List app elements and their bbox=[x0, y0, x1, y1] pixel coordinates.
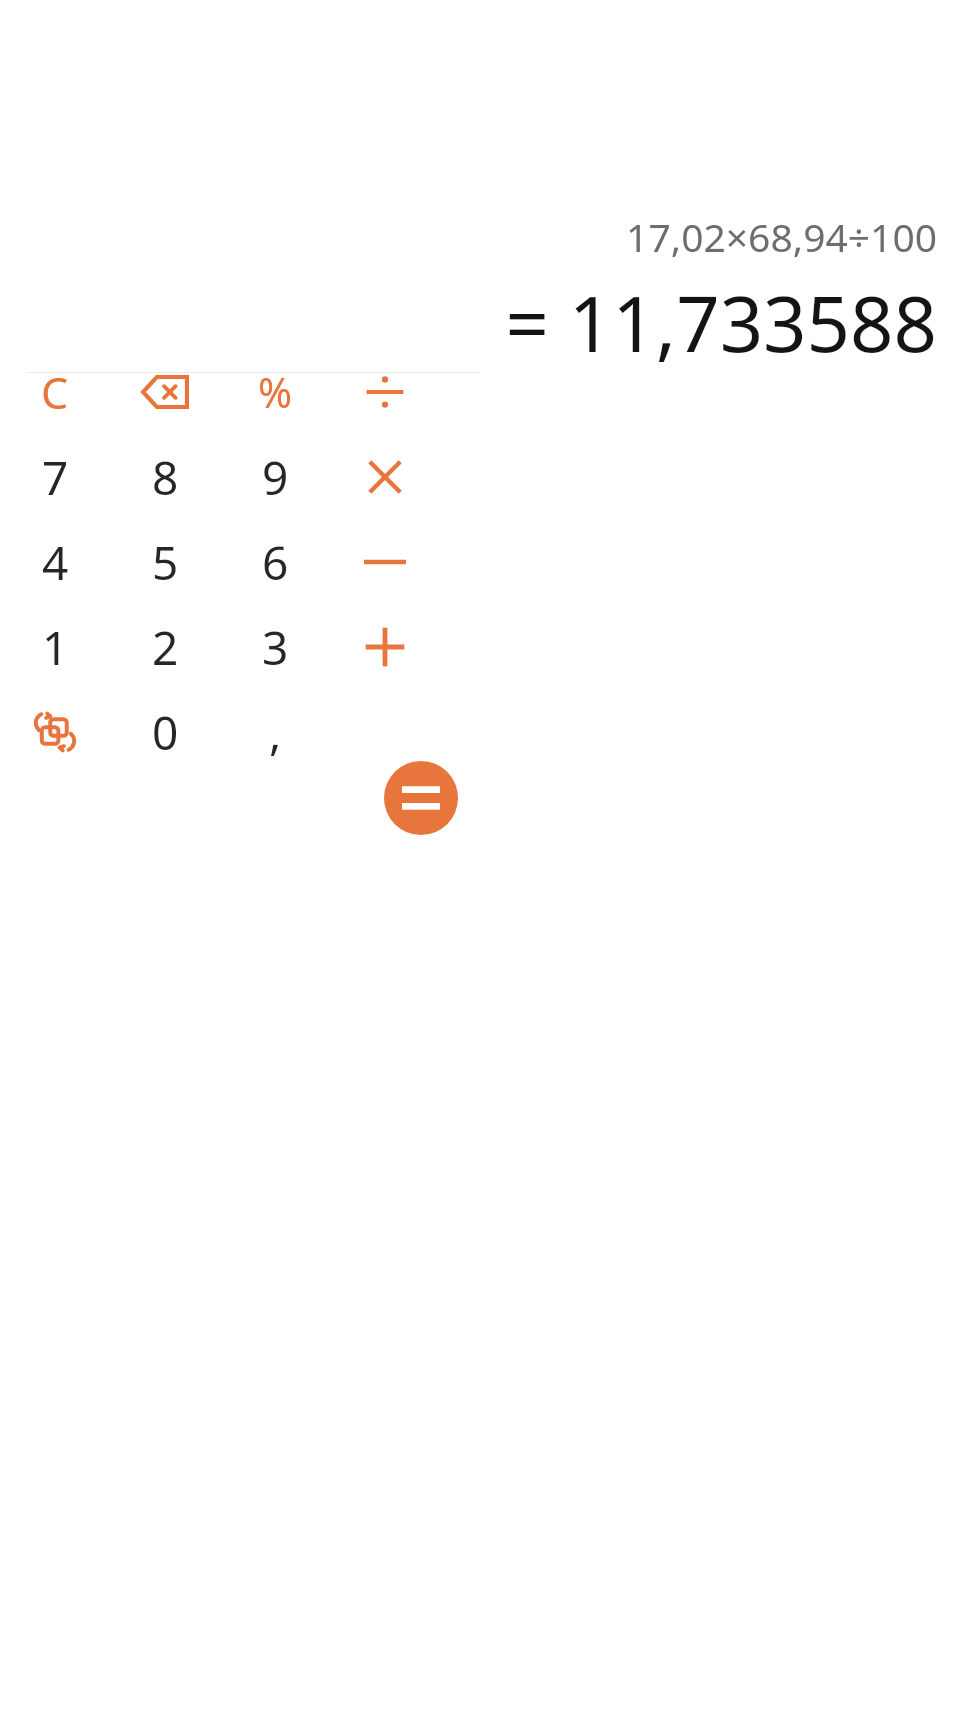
staticText: 3 bbox=[262, 616, 289, 679]
button[interactable]: 7 bbox=[1, 435, 109, 519]
staticText: C bbox=[41, 363, 69, 422]
button[interactable]: Delete bbox=[111, 350, 219, 434]
button[interactable]: 0 bbox=[111, 690, 219, 774]
staticText: % bbox=[258, 364, 293, 420]
button[interactable]: 3 bbox=[221, 605, 329, 689]
button[interactable]: Equals bbox=[384, 761, 458, 835]
button[interactable]: Multiply bbox=[331, 435, 439, 519]
staticText: 5 bbox=[152, 531, 179, 594]
button[interactable]: Divide bbox=[331, 350, 439, 434]
button[interactable]: Percent bbox=[221, 350, 329, 434]
button[interactable]: 5 bbox=[111, 520, 219, 604]
staticText: = 11,733588 bbox=[30, 271, 937, 375]
staticText: 2 bbox=[152, 616, 179, 679]
staticText: , bbox=[269, 701, 282, 764]
staticText: 7 bbox=[42, 446, 69, 509]
button[interactable]: Minus bbox=[331, 520, 439, 604]
staticText: 17,02×68,94÷100 bbox=[30, 210, 937, 263]
button[interactable]: 4 bbox=[1, 520, 109, 604]
staticText: 6 bbox=[262, 531, 289, 594]
button[interactable]: Unit converter bbox=[1, 690, 109, 774]
button[interactable]: 6 bbox=[221, 520, 329, 604]
staticText: 9 bbox=[262, 446, 289, 509]
staticText: 8 bbox=[152, 446, 179, 509]
button[interactable]: 2 bbox=[111, 605, 219, 689]
button[interactable]: 1 bbox=[1, 605, 109, 689]
button[interactable]: 8 bbox=[111, 435, 219, 519]
button[interactable]: , bbox=[221, 690, 329, 774]
button[interactable]: Clear bbox=[1, 350, 109, 434]
button[interactable]: 9 bbox=[221, 435, 329, 519]
staticText: 0 bbox=[152, 701, 179, 764]
button[interactable]: Plus bbox=[331, 605, 439, 689]
staticText: 1 bbox=[42, 616, 69, 679]
staticText: 4 bbox=[42, 531, 69, 594]
